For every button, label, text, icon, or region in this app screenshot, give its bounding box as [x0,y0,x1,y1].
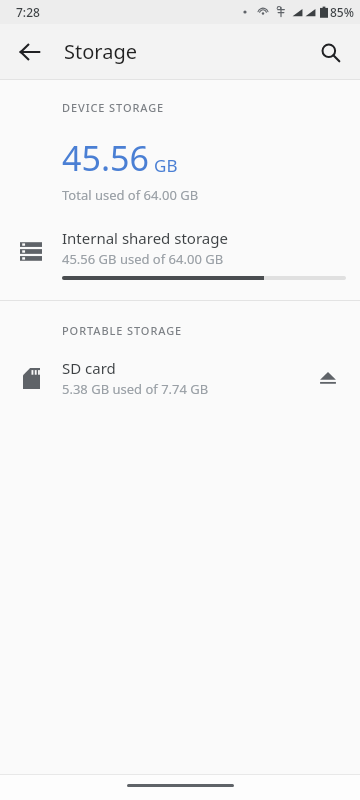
staticText: 45.56 [62,135,149,181]
button[interactable]: SD card [0,354,360,402]
button[interactable]: Internal shared storage [0,222,360,290]
staticText: 45.56 GB used of 64.00 GB [62,250,224,268]
staticText: GB [154,154,178,177]
button[interactable]: Eject SD card [306,356,350,400]
button[interactable]: Back [6,28,54,76]
staticText: SD card [62,358,116,378]
staticText: DEVICE STORAGE [62,100,165,115]
staticText: PORTABLE STORAGE [62,323,183,338]
staticText: Total used of 64.00 GB [62,186,199,204]
staticText: 7:28 [16,4,40,20]
button[interactable]: Search [306,28,354,76]
staticText: 5.38 GB used of 7.74 GB [62,380,209,398]
staticText: Storage [64,38,137,65]
staticText: Internal shared storage [62,228,228,248]
staticText: 85% [330,4,354,20]
